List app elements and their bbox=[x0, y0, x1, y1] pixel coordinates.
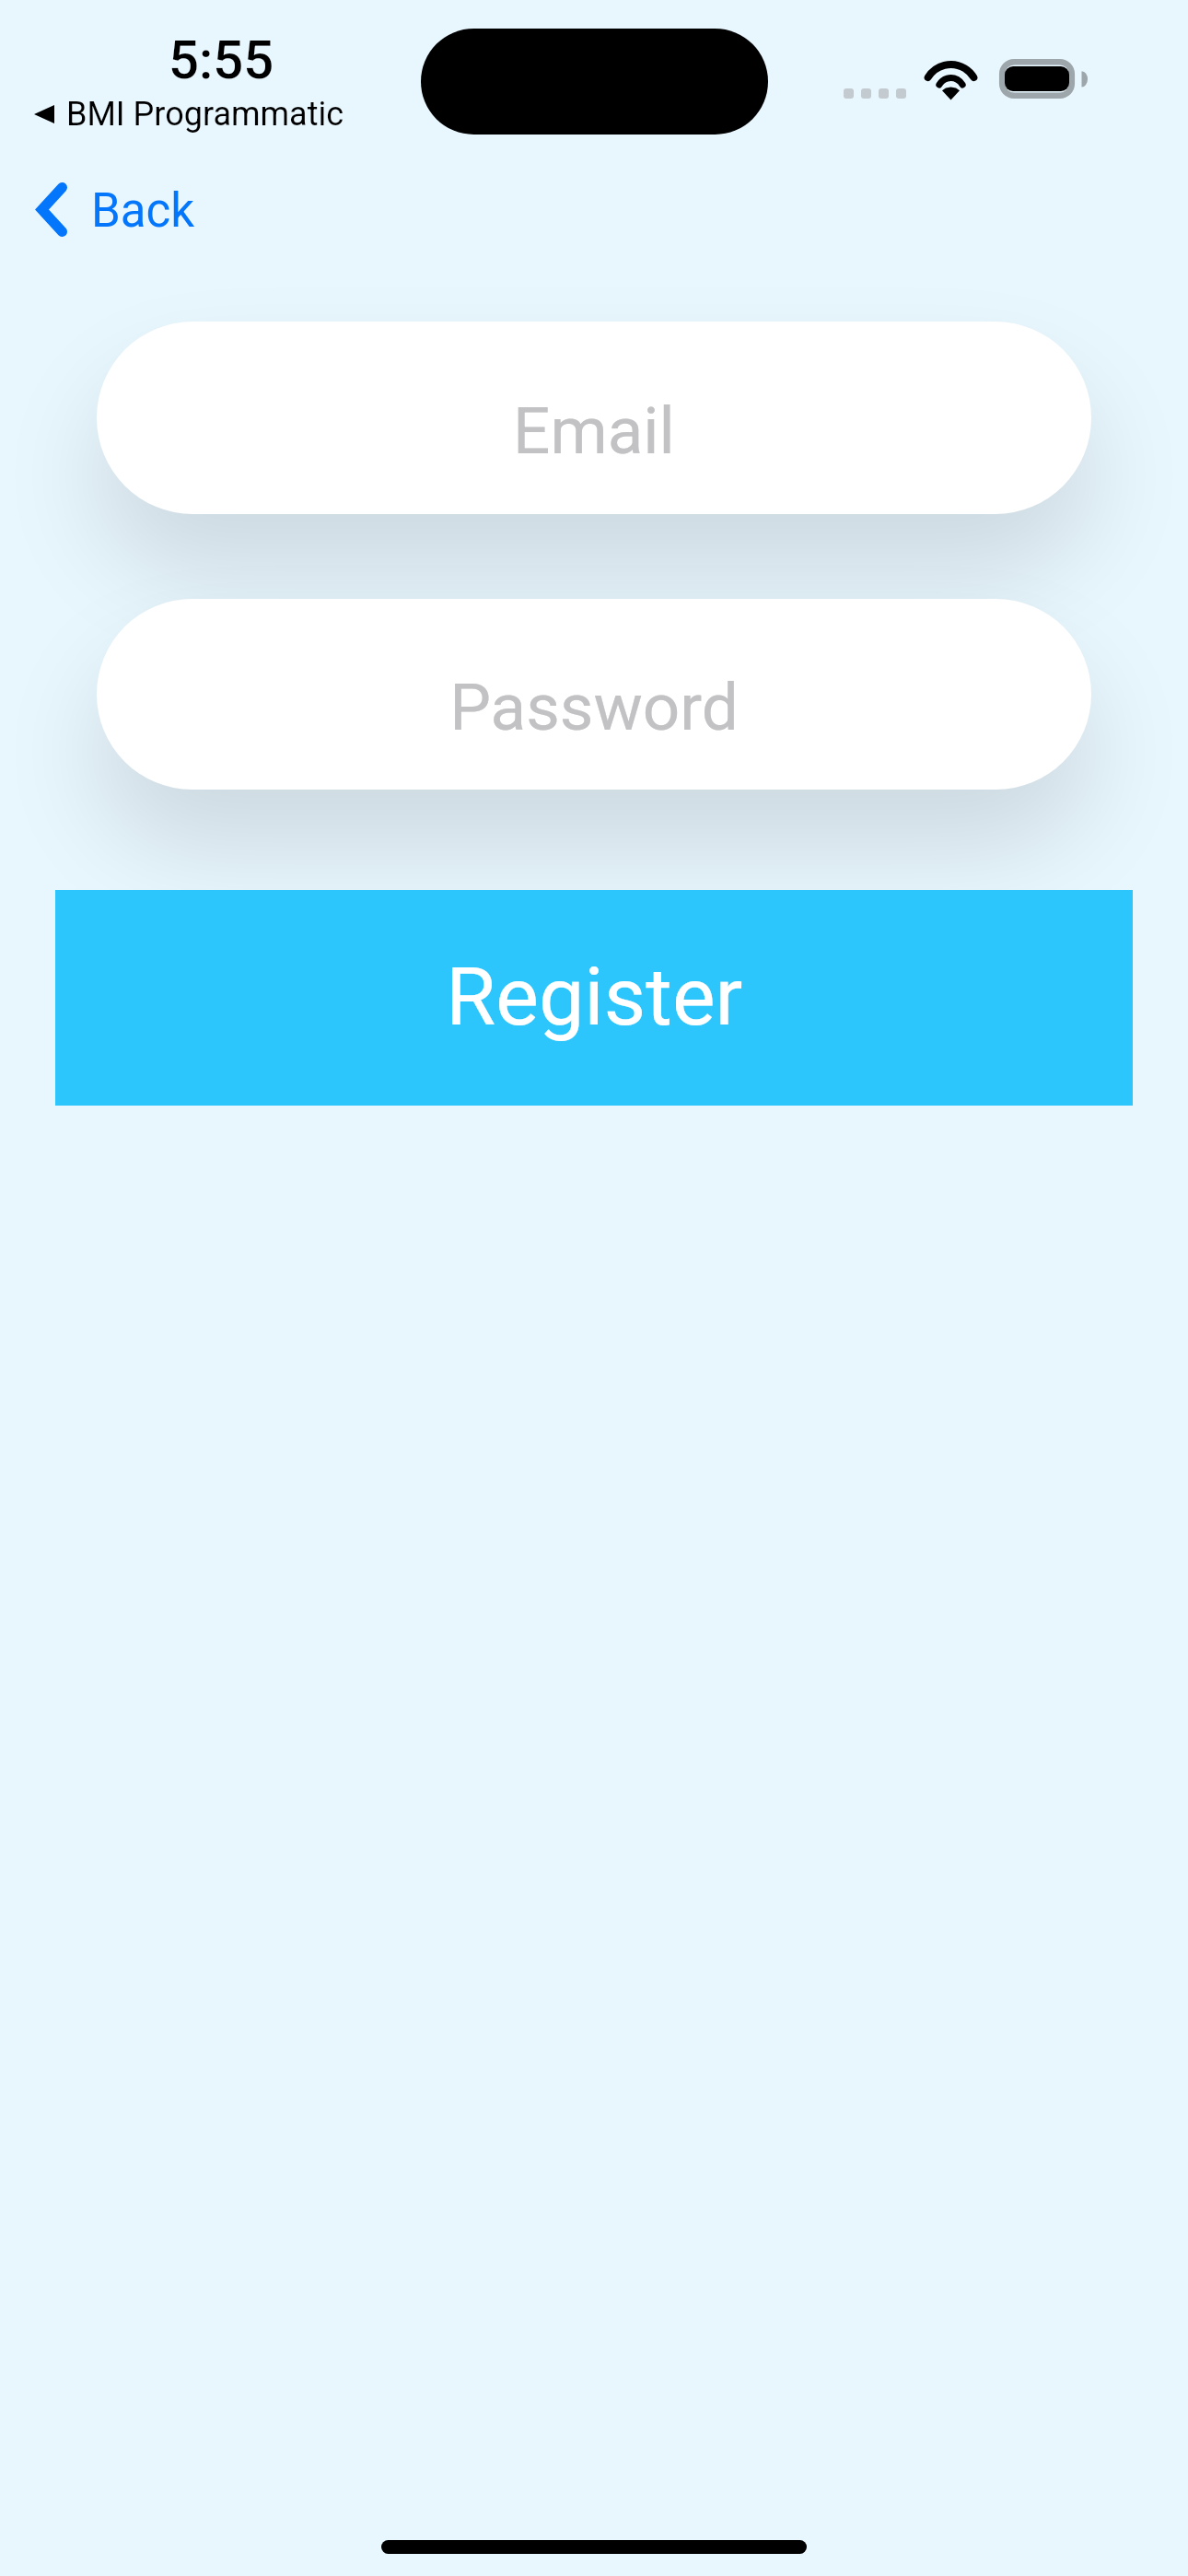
button[interactable]: Password bbox=[97, 599, 1091, 790]
staticText: Register bbox=[446, 949, 743, 1044]
other: Cellular signal bbox=[844, 88, 906, 99]
button[interactable]: Back bbox=[23, 167, 217, 252]
staticText: Back bbox=[91, 183, 195, 239]
button[interactable]: Register bbox=[55, 890, 1133, 1106]
other: Battery full bbox=[999, 59, 1087, 99]
staticText: 5:55 bbox=[169, 29, 274, 91]
other: Wi-Fi bbox=[925, 59, 977, 100]
staticText: Password bbox=[449, 669, 739, 745]
staticText: Email bbox=[513, 392, 675, 469]
button[interactable]: Email bbox=[97, 322, 1091, 514]
staticText: BMI Programmatic bbox=[66, 95, 344, 134]
